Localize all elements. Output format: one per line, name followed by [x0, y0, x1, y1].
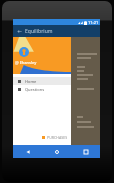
button[interactable]: Profile [19, 47, 29, 57]
button[interactable]: Questions [13, 85, 71, 93]
staticText: Equilibrium [25, 28, 53, 35]
staticText: @ Ehansley [15, 60, 37, 65]
staticText: Questions [25, 87, 45, 92]
staticText: 11:21 [88, 20, 99, 25]
button[interactable]: PURCHASES [40, 134, 70, 141]
button[interactable]: Recent apps [80, 146, 91, 157]
button[interactable]: Home [13, 77, 71, 85]
staticText: PURCHASES [47, 135, 68, 140]
button[interactable]: Back [14, 26, 24, 36]
button[interactable]: Home [51, 146, 62, 157]
button[interactable]: Back [22, 146, 33, 157]
staticText: Home [25, 79, 37, 84]
